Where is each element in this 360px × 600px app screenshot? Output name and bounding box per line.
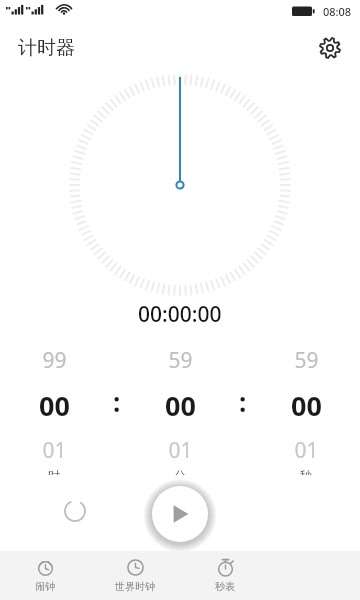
- button[interactable]: 59: [252, 340, 360, 475]
- staticText: 00: [165, 387, 196, 424]
- staticText: 秒: [300, 468, 312, 475]
- button[interactable]: 99: [0, 340, 108, 475]
- staticText: 00: [39, 387, 70, 424]
- staticText: :: [239, 384, 247, 419]
- staticText: 01: [294, 436, 319, 465]
- staticText: 计时器: [18, 36, 75, 60]
- staticText: 00:00:00: [138, 300, 222, 329]
- button[interactable]: Settings: [312, 30, 348, 66]
- staticText: 59: [294, 346, 319, 375]
- staticText: 时: [48, 468, 60, 475]
- staticText: 秒表: [215, 580, 235, 593]
- staticText: 01: [168, 436, 193, 465]
- button[interactable]: 59: [126, 340, 234, 475]
- staticText: 闹钟: [35, 580, 55, 593]
- button[interactable]: 闹钟: [0, 551, 90, 600]
- staticText: 99: [42, 346, 67, 375]
- staticText: 世界时钟: [115, 580, 155, 593]
- button[interactable]: Reset: [53, 489, 97, 533]
- staticText: :: [113, 384, 121, 419]
- staticText: 分: [174, 468, 186, 475]
- button[interactable]: Start: [151, 485, 209, 543]
- staticText: 01: [42, 436, 67, 465]
- button[interactable]: 秒表: [180, 551, 270, 600]
- staticText: 08:08: [323, 4, 352, 19]
- staticText: 59: [168, 346, 193, 375]
- button[interactable]: 世界时钟: [90, 551, 180, 600]
- staticText: 00: [291, 387, 322, 424]
